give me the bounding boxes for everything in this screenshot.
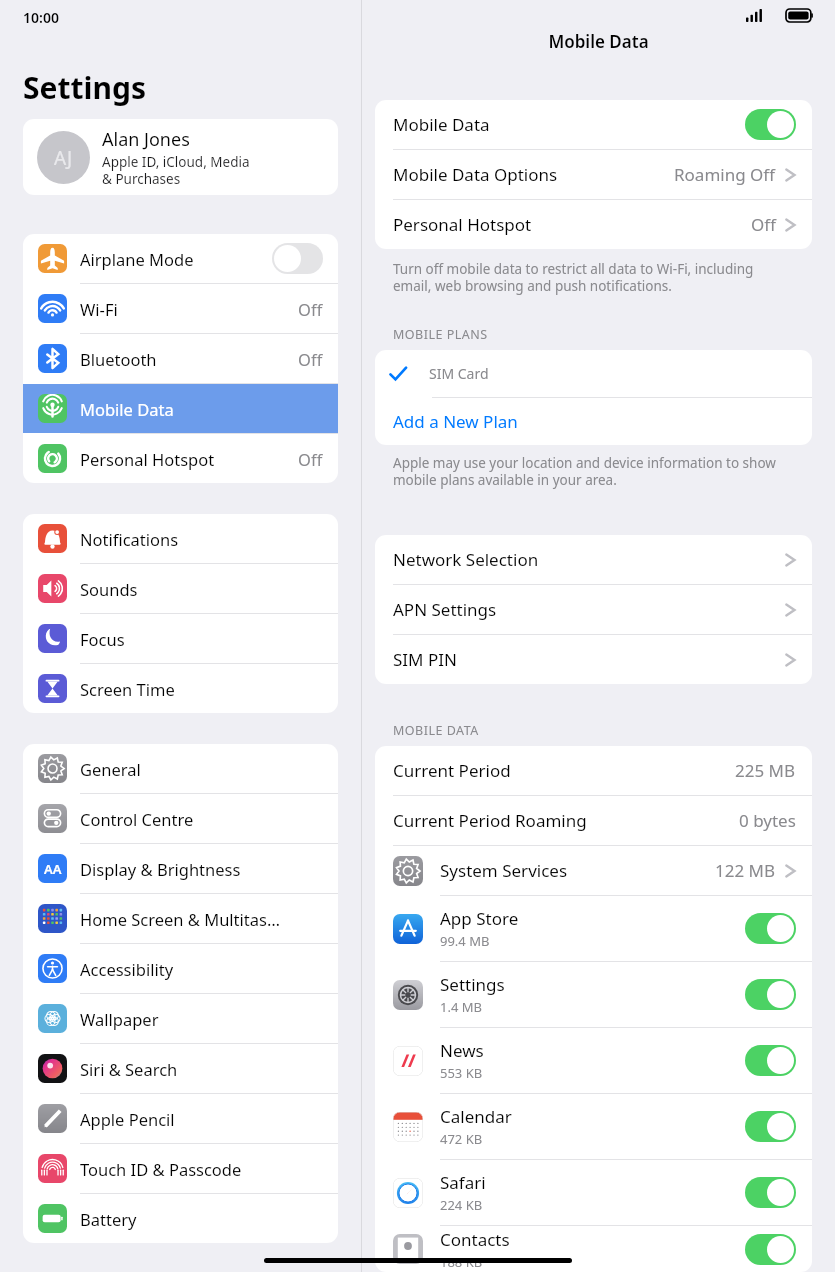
- staticText: Off: [298, 348, 323, 370]
- button[interactable]: Personal Hotspot: [375, 200, 812, 249]
- staticText: Personal Hotspot: [393, 213, 751, 236]
- button[interactable]: APN Settings: [375, 585, 812, 634]
- button[interactable]: Mobile Data Options: [375, 150, 812, 199]
- staticText: Turn off mobile data to restrict all dat…: [393, 260, 790, 295]
- button[interactable]: [745, 913, 796, 944]
- staticText: Bluetooth: [80, 348, 298, 370]
- staticText: Contacts: [440, 1228, 510, 1251]
- button[interactable]: Settings: [375, 962, 812, 1027]
- button[interactable]: Siri & Search: [23, 1044, 338, 1093]
- staticText: Sounds: [80, 578, 323, 600]
- button[interactable]: Mobile Data: [375, 100, 812, 149]
- button[interactable]: Focus: [23, 614, 338, 663]
- button[interactable]: General: [23, 744, 338, 793]
- button[interactable]: Apple Pencil: [23, 1094, 338, 1143]
- button[interactable]: Home Screen & Multitas…: [23, 894, 338, 943]
- staticText: Focus: [80, 628, 323, 650]
- staticText: Current Period: [393, 759, 735, 782]
- staticText: Display & Brightness: [80, 858, 323, 880]
- staticText: Apple may use your location and device i…: [393, 454, 790, 489]
- button[interactable]: News: [375, 1028, 812, 1093]
- button[interactable]: [745, 109, 796, 140]
- button[interactable]: Current Period Roaming: [375, 796, 812, 845]
- staticText: Control Centre: [80, 808, 323, 830]
- staticText: Roaming Off: [674, 163, 776, 186]
- button[interactable]: AJ: [23, 119, 338, 195]
- button[interactable]: System Services: [375, 846, 812, 895]
- button[interactable]: [745, 979, 796, 1010]
- button[interactable]: [745, 1177, 796, 1208]
- staticText: 472 KB: [440, 1130, 483, 1148]
- staticText: General: [80, 758, 323, 780]
- staticText: Touch ID & Passcode: [80, 1158, 323, 1180]
- staticText: Add a New Plan: [393, 410, 518, 433]
- staticText: Settings: [23, 67, 146, 108]
- staticText: Settings: [440, 973, 505, 996]
- staticText: Off: [298, 448, 323, 470]
- staticText: Personal Hotspot: [80, 448, 298, 470]
- button[interactable]: Current Period: [375, 746, 812, 795]
- staticText: SIM PIN: [393, 648, 776, 671]
- staticText: App Store: [440, 907, 519, 930]
- button[interactable]: [745, 1111, 796, 1142]
- staticText: Wi-Fi: [80, 298, 298, 320]
- button[interactable]: Add a New Plan: [375, 398, 812, 445]
- staticText: Mobile Data: [362, 30, 835, 53]
- button[interactable]: [272, 243, 323, 274]
- staticText: Siri & Search: [80, 1058, 323, 1080]
- staticText: Mobile Data Options: [393, 163, 674, 186]
- button[interactable]: Mobile Data: [23, 384, 338, 433]
- button[interactable]: Accessibility: [23, 944, 338, 993]
- staticText: APN Settings: [393, 598, 776, 621]
- staticText: 1.4 MB: [440, 998, 482, 1016]
- button[interactable]: SIM Card: [375, 350, 812, 397]
- staticText: Apple Pencil: [80, 1108, 323, 1130]
- button[interactable]: Safari: [375, 1160, 812, 1225]
- button[interactable]: Touch ID & Passcode: [23, 1144, 338, 1193]
- staticText: 225 MB: [735, 759, 796, 782]
- button[interactable]: [745, 1234, 796, 1265]
- staticText: 10:00: [23, 8, 59, 27]
- button[interactable]: Contacts: [375, 1226, 812, 1272]
- staticText: 224 KB: [440, 1196, 483, 1214]
- staticText: Wallpaper: [80, 1008, 323, 1030]
- staticText: Home Screen & Multitas…: [80, 908, 323, 930]
- staticText: Screen Time: [80, 678, 323, 700]
- staticText: Airplane Mode: [80, 248, 272, 270]
- staticText: 99.4 MB: [440, 932, 490, 950]
- button[interactable]: [745, 1045, 796, 1076]
- staticText: Safari: [440, 1171, 486, 1194]
- button[interactable]: Network Selection: [375, 535, 812, 584]
- staticText: MOBILE PLANS: [393, 326, 488, 343]
- button[interactable]: Control Centre: [23, 794, 338, 843]
- staticText: System Services: [440, 859, 568, 882]
- button[interactable]: Screen Time: [23, 664, 338, 713]
- button[interactable]: Wallpaper: [23, 994, 338, 1043]
- button[interactable]: App Store: [375, 896, 812, 961]
- staticText: 553 KB: [440, 1064, 483, 1082]
- staticText: News: [440, 1039, 484, 1062]
- staticText: SIM Card: [429, 364, 489, 383]
- staticText: Battery: [80, 1208, 323, 1230]
- button[interactable]: Battery: [23, 1194, 338, 1243]
- button[interactable]: Notifications: [23, 514, 338, 563]
- staticText: Alan Jones: [102, 127, 190, 152]
- staticText: Apple ID, iCloud, Media & Purchases: [102, 153, 250, 188]
- button[interactable]: Calendar: [375, 1094, 812, 1159]
- button[interactable]: SIM PIN: [375, 635, 812, 684]
- staticText: Off: [751, 213, 776, 236]
- staticText: Off: [298, 298, 323, 320]
- staticText: MOBILE DATA: [393, 722, 479, 739]
- button[interactable]: Bluetooth: [23, 334, 338, 383]
- button[interactable]: Personal Hotspot: [23, 434, 338, 483]
- button[interactable]: Wi-Fi: [23, 284, 338, 333]
- button[interactable]: Sounds: [23, 564, 338, 613]
- staticText: AJ: [54, 145, 73, 171]
- staticText: Calendar: [440, 1105, 512, 1128]
- staticText: Mobile Data: [80, 398, 323, 420]
- button[interactable]: AA: [23, 844, 338, 893]
- staticText: 0 bytes: [739, 809, 796, 832]
- button[interactable]: Airplane Mode: [23, 234, 338, 283]
- staticText: Current Period Roaming: [393, 809, 739, 832]
- staticText: AA: [44, 860, 62, 878]
